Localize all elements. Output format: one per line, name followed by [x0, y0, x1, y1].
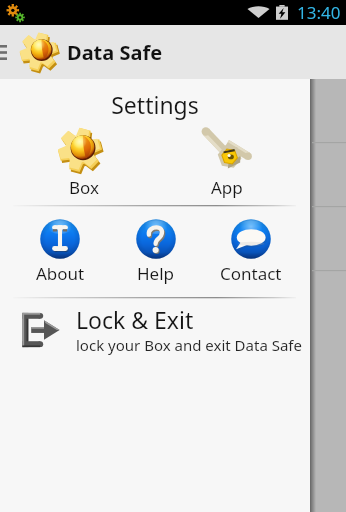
staticText: App: [211, 176, 243, 199]
staticText: Box: [69, 176, 99, 199]
staticText: Contact: [220, 262, 282, 285]
button[interactable]: App: [155, 126, 298, 199]
button[interactable]: Box: [12, 126, 155, 199]
staticText: Lock & Exit: [76, 304, 194, 335]
button[interactable]: Lock and exit: [0, 306, 310, 357]
button[interactable]: Data Safe: [0, 25, 346, 79]
staticText: About: [36, 262, 85, 285]
button[interactable]: Contact: [203, 218, 298, 285]
button[interactable]: Help: [108, 218, 203, 285]
button[interactable]: About: [12, 218, 108, 285]
staticText: lock your Box and exit Data Safe: [76, 335, 302, 355]
staticText: Data Safe: [67, 39, 163, 66]
other: Menu: [0, 45, 7, 60]
staticText: 13:40: [297, 1, 341, 24]
staticText: Settings: [0, 89, 310, 120]
other: Data Safe notification: [4, 2, 26, 24]
staticText: Help: [137, 262, 175, 285]
other: Lock and exit: [20, 311, 60, 349]
